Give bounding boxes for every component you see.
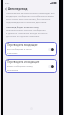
staticText: подтверждения и лишних действий.: [6, 21, 47, 24]
staticText: 9:41: [5, 2, 10, 5]
staticText: Автоперевод: [8, 7, 28, 11]
staticText: в диалоге. Оригинал всегда остаётся: [6, 32, 48, 35]
staticText: доступен по одному нажатию.: [6, 35, 40, 38]
button[interactable]: Toggle: [48, 48, 54, 51]
staticText: Ваши сообщения перед: [7, 65, 33, 68]
button[interactable]: Toggle: [48, 65, 54, 68]
staticText: язык сразу при получении, без запроса: [6, 18, 51, 21]
button[interactable]: Переводить входящие: [5, 42, 57, 56]
staticText: отправкой: [7, 69, 19, 72]
staticText: Перевод будет показан под: [6, 25, 39, 28]
staticText: Переводить входящие: [7, 43, 38, 47]
staticText: Все сообщения в чатах: [7, 48, 32, 51]
button[interactable]: Back: [4, 7, 8, 11]
staticText: Приложение автоматически переводит все: [6, 12, 55, 15]
staticText: Переводить исходящие: [7, 60, 40, 64]
staticText: входящие сообщения на выбранный вами: [6, 15, 54, 18]
staticText: и каналах: [7, 52, 18, 55]
staticText: оригинальным текстом сообщения: [6, 29, 46, 32]
button[interactable]: Переводить исходящие: [5, 59, 57, 73]
